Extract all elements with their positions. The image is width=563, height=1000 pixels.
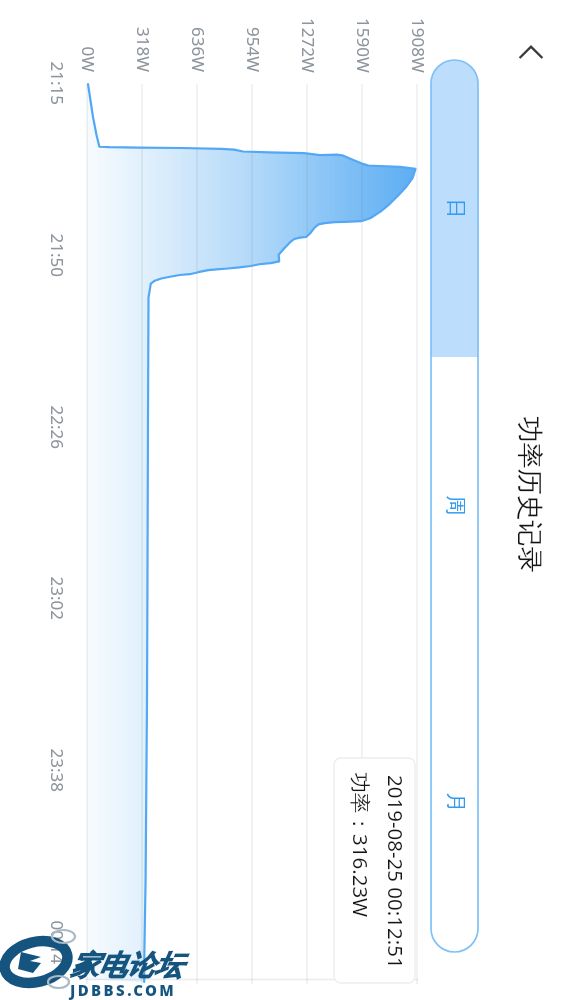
staticText: 月: [442, 792, 467, 812]
staticText: 00:14: [45, 920, 68, 964]
staticText: JDBBS.COM: [70, 980, 177, 1000]
staticText: 1908W: [407, 18, 430, 73]
staticText: 周: [442, 495, 467, 515]
staticText: 23:02: [45, 576, 68, 620]
staticText: 318W: [132, 27, 155, 72]
staticText: 功率历史记录: [512, 416, 545, 572]
staticText: 22:26: [45, 405, 68, 449]
button[interactable]: Back: [507, 31, 555, 79]
staticText: 23:38: [45, 748, 68, 792]
button[interactable]: 周: [431, 357, 478, 654]
staticText: 0W: [76, 46, 99, 72]
staticText: 21:50: [45, 233, 68, 277]
button[interactable]: 日: [431, 60, 478, 357]
button[interactable]: 月: [431, 654, 478, 951]
staticText: 功率：316.23W: [346, 772, 374, 917]
staticText: 21:15: [45, 61, 68, 105]
staticText: 636W: [187, 27, 210, 72]
staticText: 1272W: [297, 18, 320, 73]
staticText: 954W: [242, 27, 265, 72]
staticText: 1590W: [352, 18, 375, 73]
staticText: 2019-08-25 00:12:51: [382, 775, 410, 969]
staticText: 日: [442, 198, 467, 218]
staticText: 家电论坛: [70, 948, 182, 983]
